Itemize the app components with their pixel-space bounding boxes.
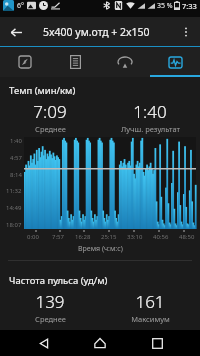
button[interactable]: 7:09 [0,100,100,134]
staticText: 40:56 [153,233,169,241]
staticText: 1:40 [133,100,167,123]
button[interactable]: Обзор [144,330,170,356]
staticText: 7:57 [52,233,64,241]
staticText: Темп (мин/км) [9,84,76,97]
staticText: 7:09 [33,100,67,123]
staticText: Лучш. результат [121,124,180,134]
staticText: Время (ч:м:с) [78,244,123,254]
button[interactable]: Ещё [175,21,197,43]
staticText: Среднее [35,124,66,134]
button[interactable]: Сводка [50,47,100,77]
staticText: 4:57 [10,154,22,162]
staticText: 6° [17,1,24,11]
staticText: Частота пульса (уд/м) [9,274,108,287]
staticText: 8:14 [10,171,22,179]
staticText: 1:40 [10,137,22,145]
staticText: 161 [135,290,165,313]
staticText: 48:50 [179,233,195,241]
staticText: 14:49 [6,204,22,212]
button[interactable]: 161 [100,290,200,324]
button[interactable]: Круги [100,47,150,77]
button[interactable]: Назад [5,21,27,43]
staticText: 25:15 [101,233,117,241]
staticText: 35 % [157,1,173,11]
staticText: 11:32 [6,187,22,195]
staticText: 0:00 [27,233,39,241]
staticText: Максимум [131,314,170,324]
staticText: 5x400 ум.отд + 2x150 [43,25,150,39]
staticText: 16:28 [75,233,91,241]
button[interactable]: Назад [31,330,57,356]
button[interactable]: 139 [0,290,100,324]
staticText: 33:10 [127,233,143,241]
button[interactable]: Главный экран [87,330,113,356]
button[interactable]: График темпа [24,137,196,229]
staticText: 7:33 [182,1,197,11]
button[interactable]: Графики [150,47,200,77]
button[interactable]: 1:40 [100,100,200,134]
staticText: Среднее [35,314,66,324]
button[interactable]: Карта [0,47,50,77]
staticText: 18:07 [6,221,22,229]
staticText: 139 [35,290,65,313]
